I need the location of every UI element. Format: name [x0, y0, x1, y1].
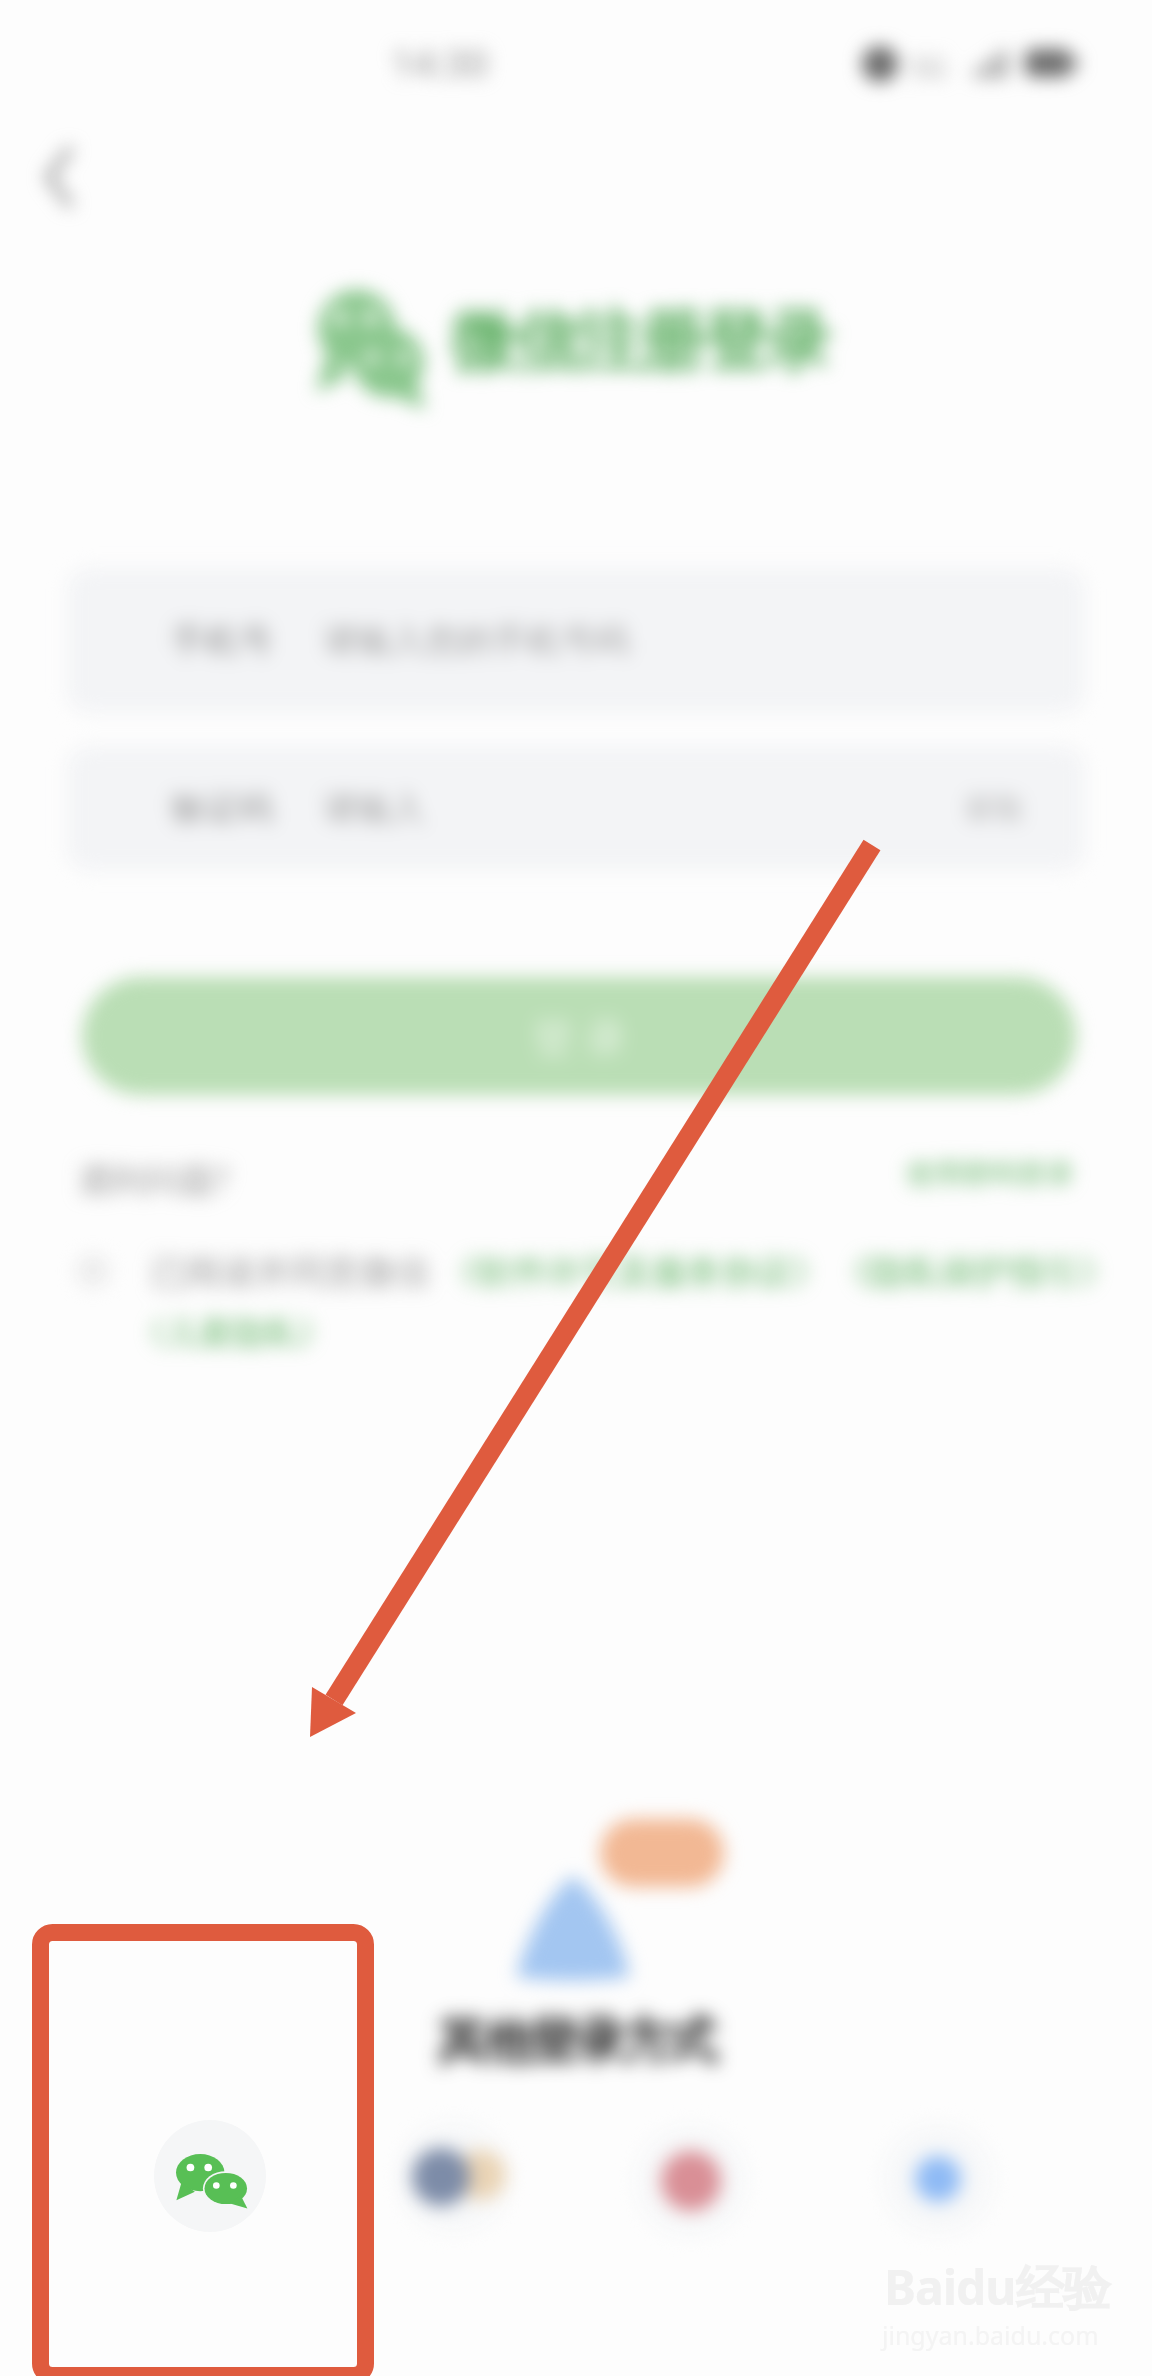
staticText: 5G [910, 48, 947, 86]
staticText: 获取 [965, 790, 1025, 828]
button[interactable]: Alipay login [882, 2123, 994, 2235]
staticText: 手机号 [171, 619, 273, 662]
button[interactable]: Back [18, 132, 108, 222]
button[interactable]: 使用密码登录 [906, 1156, 1074, 1191]
staticText: Baidu经验 [884, 2254, 1110, 2320]
staticText: 《软件许可及服务协议》 [442, 1250, 827, 1294]
staticText: 已阅读并同意微信 [150, 1250, 430, 1294]
staticText: 登 录 [532, 1008, 627, 1065]
staticText: 其他登录方式 [439, 2010, 715, 2073]
button[interactable]: Weibo login [635, 2125, 747, 2237]
button[interactable]: 遇到问题? [78, 1156, 229, 1202]
button[interactable]: WeChat login [154, 2120, 266, 2232]
staticText: 《隐私保护指引》 [835, 1250, 1115, 1294]
staticText: 14:30 [391, 36, 489, 88]
staticText: 微信注册登录 [452, 300, 830, 383]
staticText: 请输入 [323, 787, 425, 830]
staticText: jingyan.baidu.com [882, 2318, 1099, 2352]
button[interactable]: QQ login [398, 2121, 510, 2233]
staticText: 《儿童隐私》 [133, 1312, 331, 1354]
staticText: 请输入您的手机号码 [323, 619, 629, 662]
button[interactable]: 手机号 [67, 568, 1085, 713]
staticText: 验证码 [171, 787, 273, 830]
button[interactable]: 登 录 [82, 977, 1076, 1095]
button[interactable]: 验证码 [67, 746, 1085, 871]
